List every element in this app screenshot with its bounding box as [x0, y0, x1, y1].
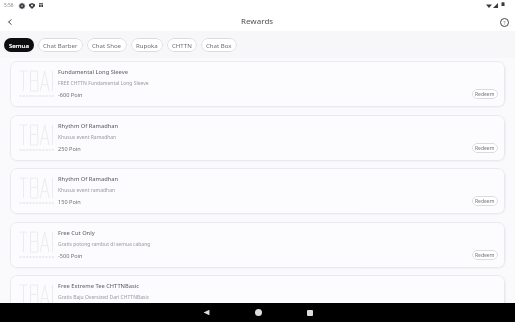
staticText: 5:56 — [4, 2, 14, 9]
staticText: Chat Box — [206, 41, 232, 49]
button[interactable]: Rhythm Of Ramadhan — [10, 168, 505, 214]
button[interactable]: Chat Shoe — [87, 38, 127, 52]
button[interactable]: Semua — [4, 38, 34, 52]
button[interactable]: Redeem — [472, 196, 498, 206]
button[interactable]: Redeem — [472, 89, 498, 99]
staticText: Khusus event Ramadhan — [58, 134, 117, 141]
staticText: Gratis Baju Oversized Dari CHTTNBasic — [58, 294, 150, 301]
staticText: FREE CHTTN Fundamental Long Sleeve — [58, 80, 149, 87]
staticText: -500 Poin — [58, 252, 83, 260]
staticText: Redeem — [475, 145, 495, 152]
button[interactable]: Back — [4, 16, 16, 28]
button[interactable]: Fundamental Long Sleeve — [10, 61, 505, 107]
staticText: Redeem — [475, 91, 495, 98]
staticText: Rewards — [241, 16, 274, 27]
button[interactable]: Free Cut Only — [10, 222, 505, 268]
staticText: Rhythm Of Ramadhan — [58, 175, 119, 183]
staticText: Rupoka — [136, 41, 158, 49]
button[interactable]: Rhythm Of Ramadhan — [10, 115, 505, 161]
staticText: Khusus event ramadhan — [58, 187, 116, 194]
staticText: Redeem — [475, 198, 495, 205]
staticText: Free Extreme Tee CHTTNBasic — [58, 282, 140, 290]
button[interactable]: Rupoka — [131, 38, 163, 52]
button[interactable]: Recents — [284, 303, 336, 322]
staticText: Chat Shoe — [92, 41, 122, 49]
button[interactable]: Help — [498, 16, 510, 28]
button[interactable]: Free Extreme Tee CHTTNBasic — [10, 275, 505, 303]
staticText: Semua — [9, 41, 29, 49]
button[interactable]: Redeem — [472, 250, 498, 260]
staticText: -600 Poin — [58, 91, 83, 99]
button[interactable]: CHTTN — [167, 38, 197, 52]
button[interactable]: Chat Box — [201, 38, 237, 52]
staticText: Rhythm Of Ramadhan — [58, 122, 119, 130]
staticText: CHTTN — [172, 41, 192, 49]
button[interactable]: Chat Barber — [38, 38, 83, 52]
staticText: Gratis potong rambut di semua cabang — [58, 241, 151, 248]
staticText: Free Cut Only — [58, 229, 95, 237]
staticText: Fundamental Long Sleeve — [58, 68, 129, 76]
staticText: Chat Barber — [43, 41, 78, 49]
button[interactable]: Back — [180, 303, 232, 322]
staticText: 250 Poin — [58, 145, 81, 153]
staticText: Redeem — [475, 252, 495, 259]
button[interactable]: Home — [232, 303, 284, 322]
staticText: ? — [503, 19, 506, 26]
staticText: 150 Poin — [58, 198, 81, 206]
button[interactable]: Redeem — [472, 143, 498, 153]
